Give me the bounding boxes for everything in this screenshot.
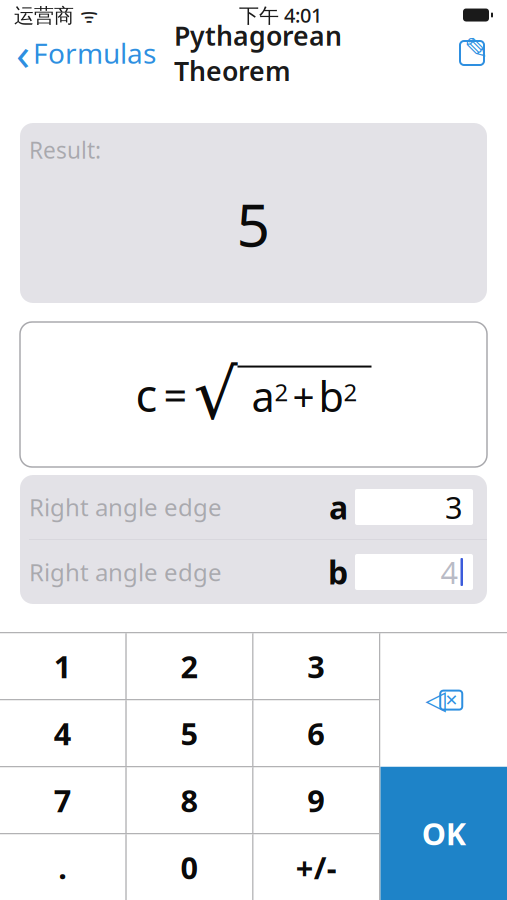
staticText: 8 [180, 780, 198, 821]
staticText: 7 [54, 780, 72, 821]
staticText: c [135, 364, 157, 425]
staticText: 3 [445, 487, 463, 527]
staticText: 4 [440, 552, 458, 592]
staticText: a [251, 369, 274, 423]
staticText: 下午 4:01 [239, 2, 322, 28]
button[interactable]: +/- [254, 834, 379, 900]
button[interactable]: 7 [0, 767, 125, 833]
button[interactable]: 2 [127, 633, 252, 699]
staticText: Right angle edge [29, 491, 222, 523]
staticText: +/- [296, 847, 337, 888]
staticText: ✎ [464, 32, 489, 65]
button[interactable]: Delete [380, 633, 507, 767]
staticText: 2 [180, 646, 198, 687]
staticText: 1 [54, 646, 72, 687]
staticText: √ [193, 355, 237, 434]
staticText: 5 [180, 713, 198, 754]
staticText: + [292, 370, 314, 422]
staticText: OK [422, 813, 466, 854]
button[interactable]: OK [380, 767, 507, 900]
button[interactable]: 9 [254, 767, 379, 833]
staticText: ◁ [425, 685, 446, 715]
button[interactable]: 8 [127, 767, 252, 833]
staticText: = [163, 367, 187, 422]
staticText: b [318, 369, 343, 423]
staticText: 2 [343, 376, 357, 408]
staticText: 2 [274, 376, 288, 408]
button[interactable]: 1 [0, 633, 125, 699]
staticText: 5 [236, 185, 270, 263]
button[interactable]: 6 [254, 700, 379, 766]
button[interactable]: Edit [455, 36, 507, 70]
button[interactable]: Right angle edge [20, 540, 487, 604]
staticText: 3 [307, 646, 325, 687]
staticText: Formulas [33, 34, 156, 72]
staticText: 4 [54, 713, 72, 754]
button[interactable]: Right angle edge [20, 475, 487, 539]
button[interactable]: . [0, 834, 125, 900]
staticText: ‹ [16, 23, 30, 83]
button[interactable]: 4 [0, 700, 125, 766]
staticText: ✕ [445, 691, 458, 709]
button[interactable]: 0 [127, 834, 252, 900]
staticText: Right angle edge [29, 556, 222, 588]
staticText: 6 [307, 713, 325, 754]
staticText: b [328, 551, 348, 593]
staticText: 0 [180, 847, 198, 888]
button[interactable]: 3 [254, 633, 379, 699]
staticText: Result: [29, 135, 101, 165]
staticText: 9 [307, 780, 325, 821]
button[interactable]: ‹ [0, 19, 156, 87]
staticText: Pythagorean Theorem [174, 18, 342, 88]
staticText: a [329, 486, 348, 528]
staticText: 运营商 ᯤ [14, 2, 98, 28]
button[interactable]: 5 [127, 700, 252, 766]
staticText: . [58, 847, 67, 888]
